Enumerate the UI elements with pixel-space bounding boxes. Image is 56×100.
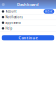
staticText: Help [5, 27, 12, 30]
staticText: Active [45, 10, 53, 13]
staticText: Notifications [5, 15, 22, 19]
staticText: Dashboard [17, 2, 39, 7]
staticText: Appearance [5, 21, 21, 24]
staticText: Continue [18, 35, 37, 40]
staticText: Account [5, 10, 16, 13]
button[interactable]: Menu [2, 3, 5, 6]
button[interactable]: Account [0, 9, 56, 14]
button[interactable]: Appearance [0, 20, 56, 26]
button[interactable]: Help [0, 26, 56, 31]
button[interactable]: Notifications [0, 14, 56, 20]
button[interactable]: Continue [2, 35, 54, 40]
